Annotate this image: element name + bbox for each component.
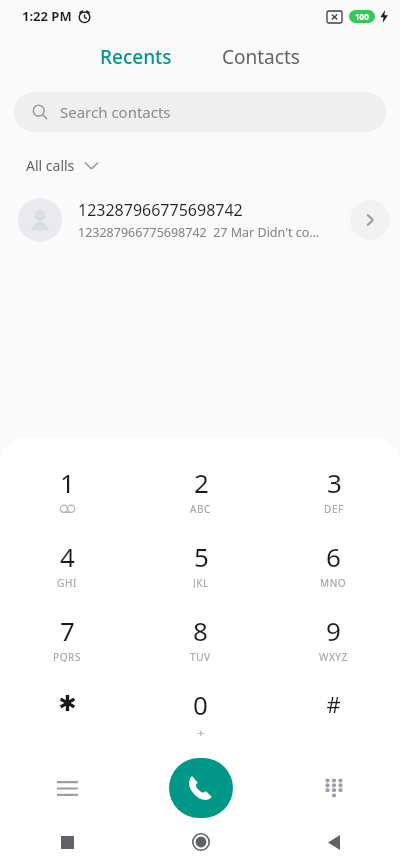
staticText: 5 [194,539,209,574]
button[interactable]: 3 [267,452,400,526]
staticText: 123287966775698742 27 Mar Didn't co… [78,224,320,241]
staticText: DEF [324,502,344,514]
button[interactable]: 5 [134,526,267,600]
staticText: + [197,724,205,736]
staticText: MNO [320,576,347,588]
button[interactable]: 6 [267,526,400,600]
staticText: Search contacts [60,102,171,122]
staticText: All calls [26,156,75,175]
button[interactable]: 123287966775698742 [0,189,400,251]
staticText: JKL [193,576,209,588]
button[interactable]: Recents [84,38,188,76]
button[interactable]: 7 [0,600,134,674]
staticText: 1:22 PM [22,7,72,25]
button[interactable]: Call details [350,200,390,240]
button[interactable]: 2 [134,452,267,526]
staticText: TUV [190,650,211,662]
button[interactable]: # [267,674,400,748]
staticText: 100 [355,11,369,22]
button[interactable]: Home [179,820,223,864]
button[interactable]: All calls [18,150,106,181]
staticText: PQRS [53,650,81,662]
staticText: ✱ [58,691,77,717]
staticText: 2 [194,465,209,500]
button[interactable]: 1 [0,452,134,526]
button[interactable]: Contacts [206,38,316,76]
staticText: 8 [193,613,208,648]
staticText: # [326,689,341,719]
button[interactable]: Search contacts [14,92,386,132]
staticText: Recents [100,44,172,70]
staticText: ABC [190,502,212,514]
button[interactable]: Back [312,820,356,864]
button[interactable]: 8 [134,600,267,674]
button[interactable]: Hide dialpad [310,764,358,812]
button[interactable]: 4 [0,526,134,600]
staticText: 3 [327,465,342,500]
staticText: 7 [60,613,75,648]
button[interactable]: Call [169,758,233,818]
button[interactable]: Recents [45,820,89,864]
staticText: 1 [60,465,75,500]
button[interactable]: 9 [267,600,400,674]
staticText: 4 [60,539,75,574]
staticText: GHI [57,576,77,588]
staticText: 6 [326,539,341,574]
button[interactable]: ✱ [0,674,134,748]
staticText: 9 [326,613,341,648]
staticText: WXYZ [319,650,348,662]
button[interactable]: Call log [43,764,91,812]
button[interactable]: 0 [134,674,267,748]
staticText: 0 [193,687,208,722]
staticText: Contacts [222,44,300,70]
staticText: 123287966775698742 [78,199,243,221]
